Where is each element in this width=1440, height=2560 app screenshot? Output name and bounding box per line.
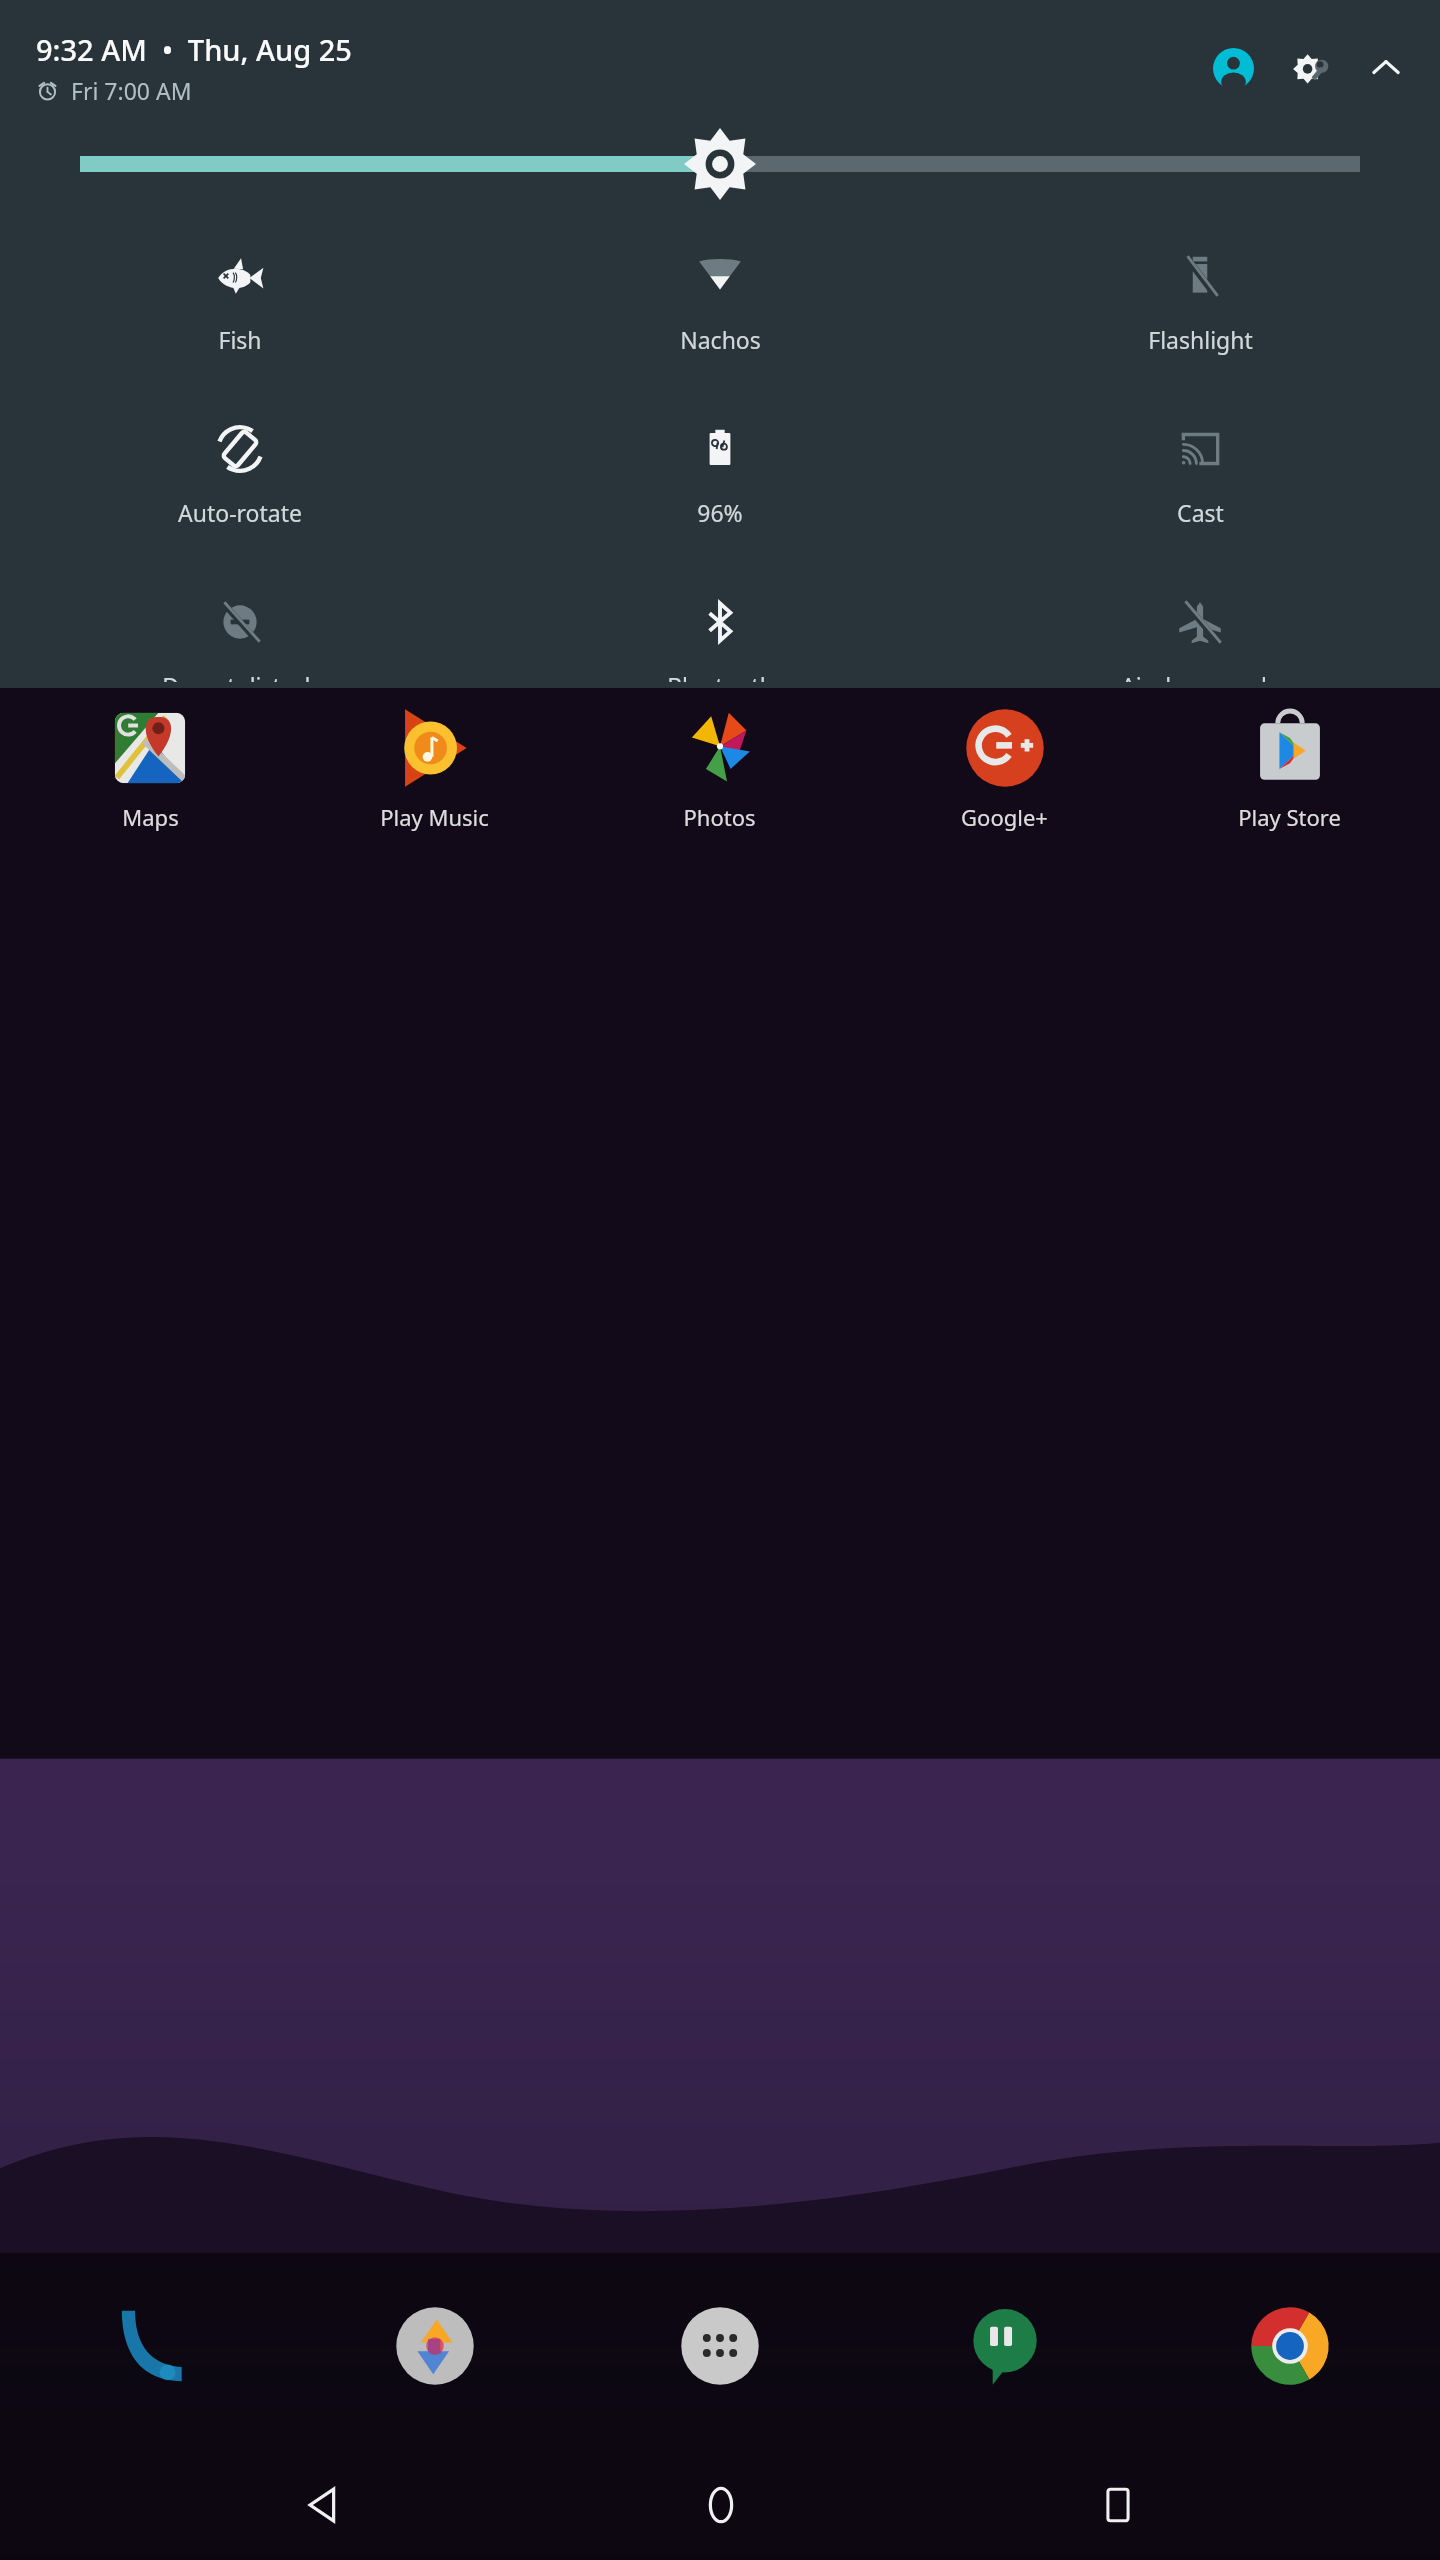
button[interactable]: Settings — [1282, 38, 1342, 98]
staticText: Airplane mode — [1121, 670, 1280, 682]
button[interactable]: Auto-rotate — [0, 417, 480, 534]
button[interactable]: Play Music — [292, 700, 577, 836]
staticText: Bluetooth — [667, 670, 774, 682]
button[interactable]: Hangouts — [862, 2302, 1147, 2390]
button[interactable]: Cast — [960, 417, 1440, 534]
button[interactable]: Do not disturb — [0, 590, 480, 688]
staticText: 96% — [697, 497, 743, 528]
button[interactable]: Bluetooth — [480, 590, 960, 688]
button[interactable]: Play Store — [1147, 700, 1432, 836]
staticText: Play Store — [1238, 802, 1341, 832]
staticText: Photos — [683, 802, 756, 832]
button[interactable]: Recents — [1072, 2459, 1164, 2551]
staticText: Maps — [122, 802, 179, 832]
button[interactable]: Google+ — [862, 700, 1147, 836]
button[interactable]: Fish — [0, 244, 480, 361]
staticText: Fish — [218, 324, 262, 355]
button[interactable]: Phone — [8, 2302, 292, 2390]
button[interactable]: Home — [674, 2458, 768, 2552]
button[interactable]: User profile — [1205, 40, 1262, 97]
staticText: Nachos — [680, 324, 761, 355]
staticText: Do not disturb — [162, 670, 319, 682]
button[interactable]: Airplane mode — [960, 590, 1440, 688]
staticText: Cast — [1177, 497, 1224, 528]
button[interactable]: Files — [292, 2302, 577, 2390]
button[interactable]: Brightness — [0, 124, 1440, 204]
button[interactable]: Back — [276, 2458, 370, 2552]
staticText: Fri 7:00 AM — [71, 75, 192, 106]
button[interactable]: Chrome — [1147, 2302, 1432, 2390]
button[interactable]: Nachos — [480, 244, 960, 361]
staticText: Google+ — [961, 802, 1048, 832]
button[interactable]: Photos — [577, 700, 862, 836]
staticText: 9:32 AM • Thu, Aug 25 — [36, 30, 352, 69]
button[interactable]: Apps — [577, 2302, 862, 2390]
button[interactable]: 96% — [480, 417, 960, 534]
button[interactable]: Maps — [8, 700, 292, 836]
button[interactable]: Flashlight — [960, 244, 1440, 361]
staticText: Play Music — [380, 802, 489, 832]
button[interactable]: Collapse — [1360, 42, 1412, 94]
staticText: Auto-rotate — [178, 497, 302, 528]
staticText: Flashlight — [1148, 324, 1253, 355]
